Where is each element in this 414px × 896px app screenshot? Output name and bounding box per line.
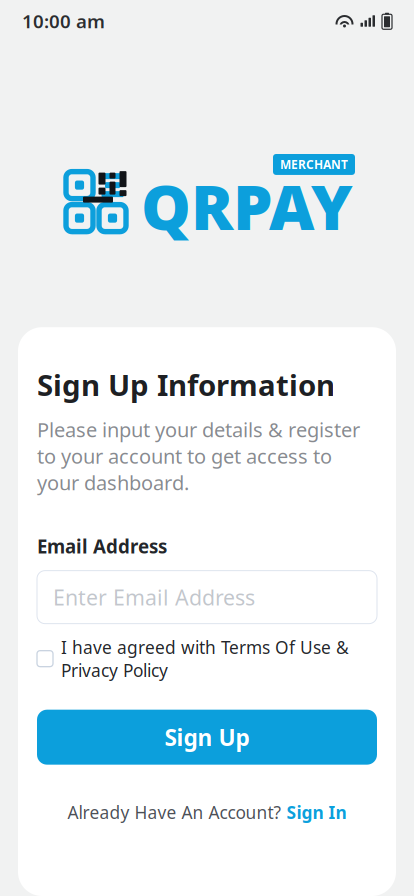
staticText: I have agreed with Terms Of Use & Privac… <box>61 636 349 682</box>
staticText: QRPAY <box>141 164 353 247</box>
staticText: Enter Email Address <box>53 583 255 611</box>
button[interactable]: Already Have An Account? <box>37 801 377 824</box>
staticText: MERCHANT <box>280 156 348 172</box>
staticText: 10:00 am <box>22 9 105 33</box>
button[interactable]: I have agreed with Terms Of Use & Privac… <box>37 636 377 682</box>
staticText: Email Address <box>37 534 167 559</box>
staticText: Sign Up <box>164 722 249 752</box>
staticText: Already Have An Account? <box>67 801 281 824</box>
staticText: Sign Up Information <box>37 365 335 404</box>
staticText: Sign In <box>286 801 346 824</box>
button[interactable]: Sign Up <box>37 710 377 765</box>
staticText: Please input your details & register to … <box>37 416 360 496</box>
